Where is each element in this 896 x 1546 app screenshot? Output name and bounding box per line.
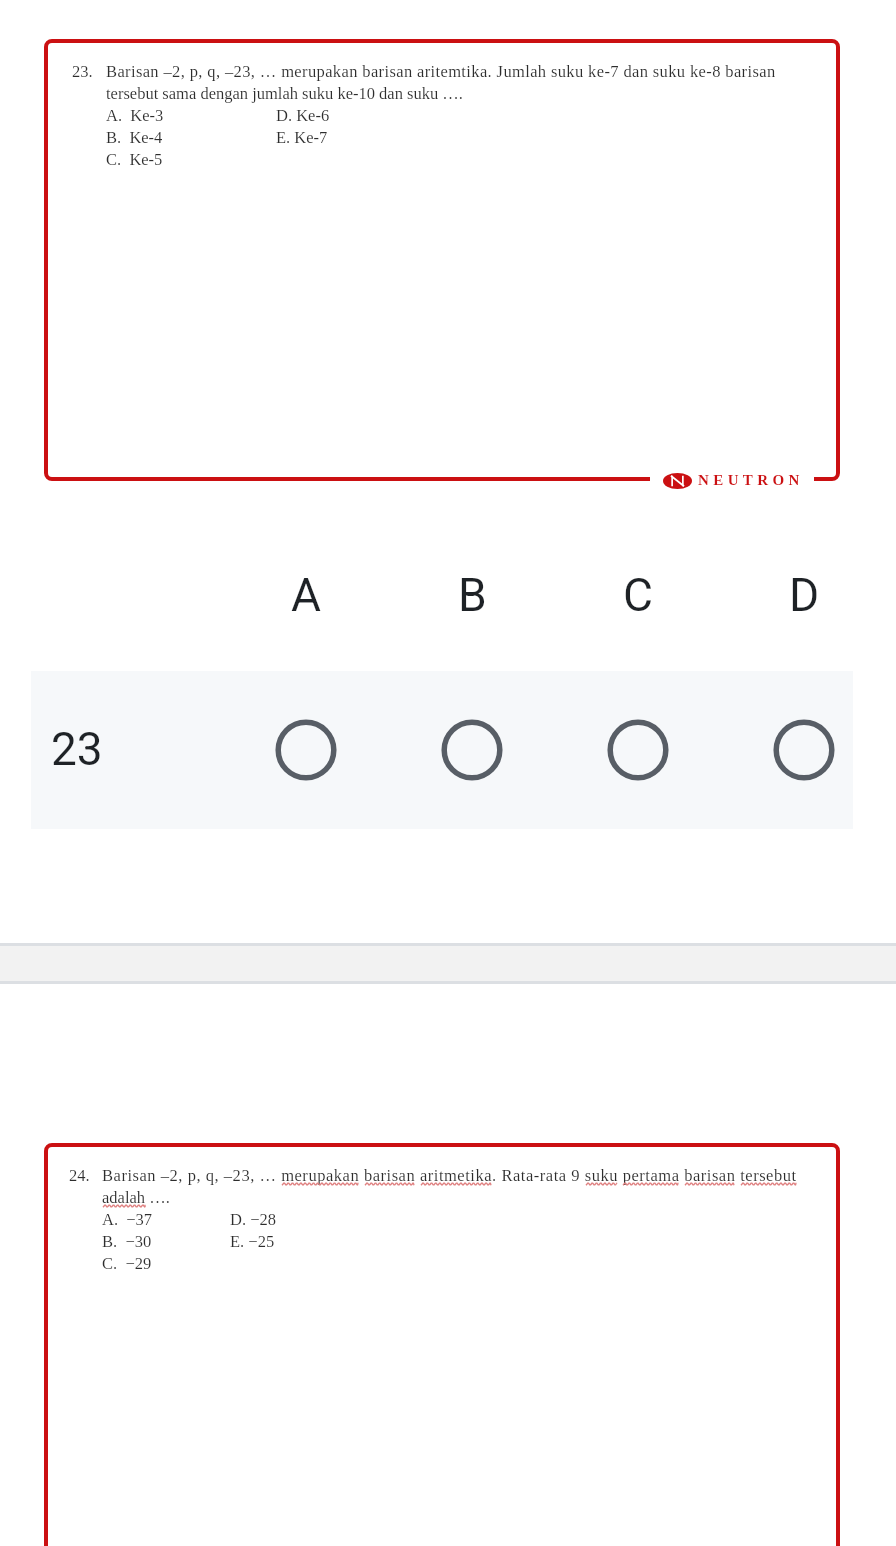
staticText: B. −30 <box>102 1232 152 1250</box>
staticText: B. Ke-4 <box>106 128 163 146</box>
staticText: 23. <box>72 62 93 80</box>
staticText: B <box>458 568 487 622</box>
staticText: E. −25 <box>230 1232 275 1250</box>
staticText: D <box>789 568 820 622</box>
button[interactable]: Question image <box>44 1143 840 1546</box>
button[interactable]: Question image <box>44 39 840 481</box>
staticText: D. Ke-6 <box>276 106 330 124</box>
staticText: Barisan –2, p, q, –23, … merupakan baris… <box>102 1166 797 1184</box>
staticText: tersebut sama dengan jumlah suku ke-10 d… <box>106 84 463 102</box>
staticText: C. Ke-5 <box>106 150 163 168</box>
staticText: NEUTRON <box>698 472 804 489</box>
staticText: E. Ke-7 <box>276 128 328 146</box>
staticText: 23 <box>51 722 103 776</box>
staticText: A. Ke-3 <box>106 106 164 124</box>
button[interactable]: Answer A for question 23 <box>276 720 336 780</box>
button[interactable]: Answer B for question 23 <box>442 720 502 780</box>
staticText: A <box>291 568 322 622</box>
staticText: A. −37 <box>102 1210 153 1228</box>
staticText: D. −28 <box>230 1210 276 1228</box>
staticText: C. −29 <box>102 1254 152 1272</box>
button[interactable]: Answer D for question 23 <box>774 720 834 780</box>
button[interactable]: Answer C for question 23 <box>608 720 668 780</box>
staticText: Barisan –2, p, q, –23, … merupakan baris… <box>106 62 776 80</box>
staticText: adalah …. <box>102 1188 170 1206</box>
staticText: C <box>623 568 653 622</box>
staticText: 24. <box>69 1166 90 1184</box>
